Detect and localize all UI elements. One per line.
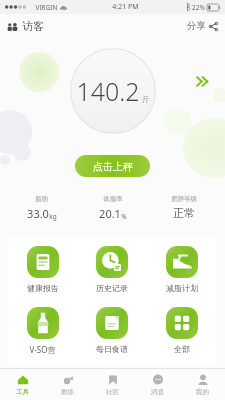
button[interactable]: 点击上秤: [75, 155, 150, 177]
staticText: 教练: [61, 388, 74, 396]
staticText: 体脂率: [103, 195, 123, 203]
staticText: 全部: [174, 344, 190, 354]
staticText: 20.1: [99, 206, 121, 221]
staticText: VIRGIN: [35, 3, 58, 12]
button[interactable]: 肥胖等级: [148, 193, 219, 222]
button[interactable]: 全部: [147, 305, 217, 356]
button[interactable]: 健康报告: [8, 244, 77, 295]
staticText: 分享: [187, 20, 206, 32]
button[interactable]: 分享: [181, 17, 225, 35]
staticText: 点击上秤: [93, 160, 133, 173]
staticText: 22%: [192, 3, 205, 12]
staticText: 4:21 PM: [112, 2, 139, 12]
staticText: V-SO营: [29, 344, 56, 355]
staticText: 33.0: [27, 206, 49, 221]
staticText: 社区: [106, 388, 119, 396]
button[interactable]: 我的: [180, 369, 225, 400]
staticText: 正常: [173, 206, 195, 220]
staticText: 工具: [16, 388, 29, 396]
button[interactable]: 消息: [135, 369, 180, 400]
staticText: 肥胖等级: [171, 195, 197, 203]
staticText: 健康报告: [27, 283, 59, 293]
button[interactable]: 访客: [0, 16, 50, 36]
button[interactable]: Next: [192, 72, 215, 91]
button[interactable]: V-SO营: [8, 305, 77, 357]
button[interactable]: 工具: [0, 369, 45, 400]
staticText: 每日食谱: [96, 344, 128, 354]
button[interactable]: 减脂计划: [147, 244, 217, 295]
staticText: 脂肪: [35, 195, 48, 203]
staticText: 我的: [196, 388, 209, 396]
staticText: kg: [49, 212, 57, 221]
staticText: 减脂计划: [166, 283, 198, 293]
button[interactable]: 每日食谱: [77, 305, 147, 356]
staticText: 访客: [22, 19, 44, 33]
staticText: 140.2: [76, 74, 140, 108]
staticText: %: [121, 212, 127, 221]
button[interactable]: 140.2: [70, 48, 156, 134]
button[interactable]: 历史记录: [77, 244, 147, 295]
staticText: 斤: [142, 95, 150, 104]
staticText: 消息: [151, 388, 164, 396]
button[interactable]: 教练: [45, 369, 90, 400]
other: Share: [209, 22, 218, 31]
button[interactable]: 体脂率: [77, 193, 148, 223]
button[interactable]: 脂肪: [6, 193, 77, 223]
button[interactable]: 社区: [90, 369, 135, 400]
staticText: 历史记录: [96, 283, 128, 293]
